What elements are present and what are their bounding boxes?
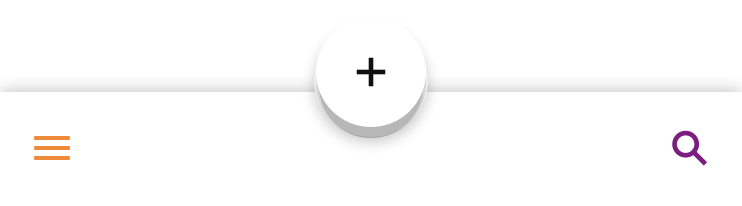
button[interactable]: Menu <box>14 102 90 195</box>
button[interactable]: Search <box>652 102 728 195</box>
button[interactable]: Add <box>286 0 456 157</box>
